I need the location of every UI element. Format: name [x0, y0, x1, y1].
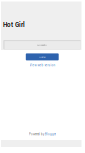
- staticText: No posts.: [37, 43, 47, 46]
- staticText: View web version: [29, 63, 55, 67]
- button[interactable]: Home: [26, 53, 59, 60]
- staticText: Blogger: [45, 133, 56, 136]
- staticText: Hot Girl: [3, 21, 25, 28]
- staticText: Home: [39, 55, 45, 58]
- button[interactable]: View web version: [0, 63, 85, 67]
- staticText: Powered by: [29, 133, 44, 136]
- button[interactable]: Blogger: [45, 133, 56, 136]
